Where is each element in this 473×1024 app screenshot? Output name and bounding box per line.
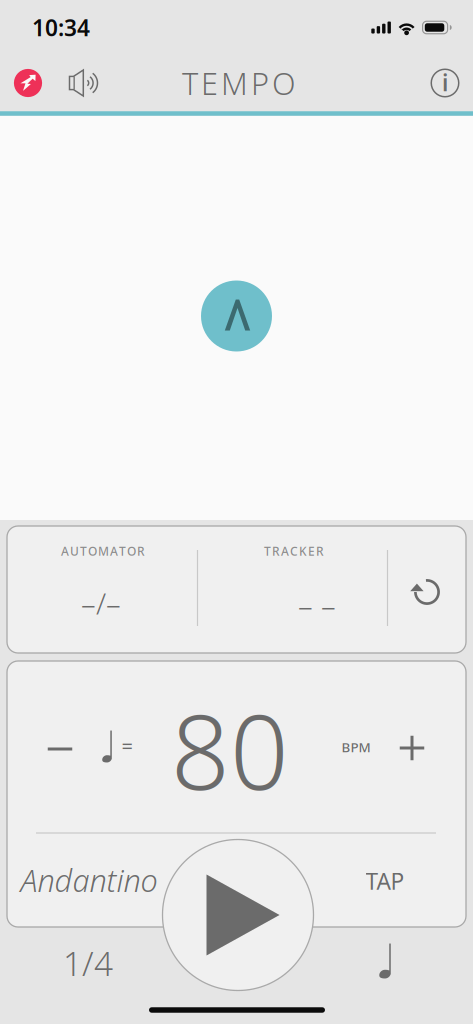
button[interactable]: Sound (64, 66, 104, 100)
button[interactable]: Reset (392, 547, 462, 637)
staticText: A U T O M A T O R (61, 543, 145, 559)
button[interactable]: Increase tempo (381, 705, 443, 791)
staticText: BPM (341, 738, 370, 756)
staticText: –/– (81, 583, 121, 622)
staticText: T R A C K E R (264, 543, 324, 559)
staticText: i (442, 67, 448, 97)
staticText: T E M P O (182, 63, 296, 103)
button[interactable]: Note value (353, 930, 417, 992)
staticText: 80 (171, 682, 289, 818)
button[interactable]: 1/4 (38, 932, 138, 994)
staticText: Andantino (20, 860, 157, 900)
staticText: 1/4 (63, 941, 113, 985)
staticText: – – (298, 585, 336, 624)
button[interactable]: Accent (11, 66, 45, 100)
staticText: 10:34 (32, 12, 90, 42)
button[interactable]: Decrease tempo (29, 706, 91, 792)
button[interactable]: TAP (340, 848, 430, 914)
staticText: = (121, 733, 132, 759)
staticText: TAP (365, 866, 404, 896)
button[interactable]: Info (428, 66, 462, 100)
